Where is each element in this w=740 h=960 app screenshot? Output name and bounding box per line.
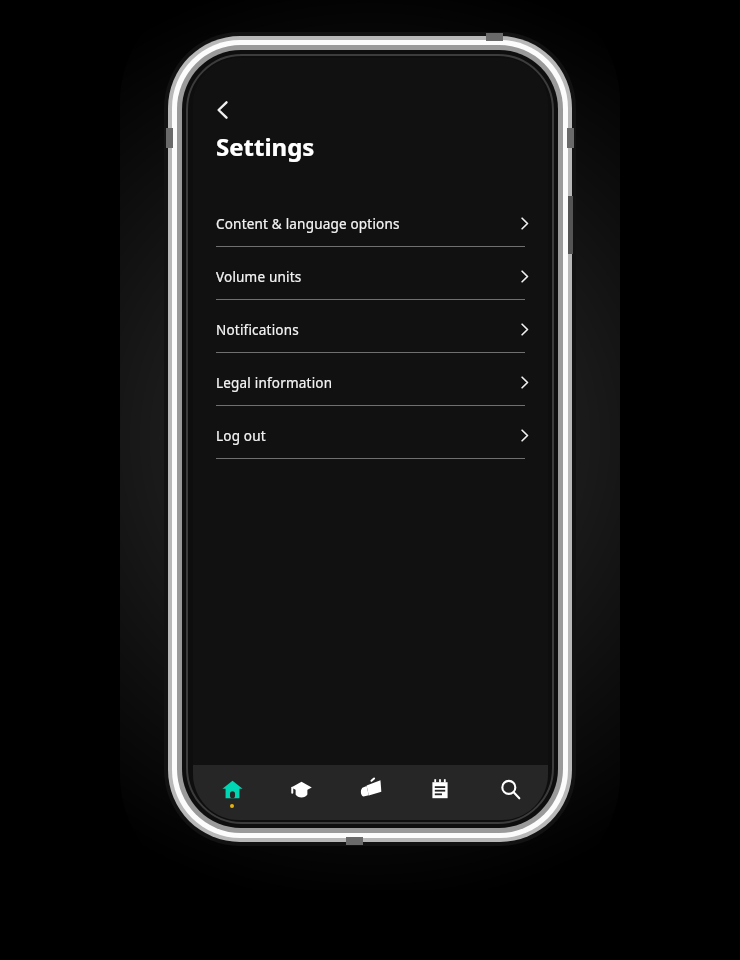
staticText: Volume units bbox=[216, 268, 302, 286]
button[interactable]: Volume units bbox=[193, 254, 548, 307]
button[interactable]: Home bbox=[201, 765, 263, 820]
button[interactable]: Log out bbox=[193, 413, 548, 466]
staticText: Content & language options bbox=[216, 215, 400, 233]
button[interactable]: Content & language options bbox=[193, 201, 548, 254]
button[interactable]: Announcements bbox=[340, 765, 402, 820]
staticText: Settings bbox=[216, 130, 315, 163]
button[interactable]: Legal information bbox=[193, 360, 548, 413]
button[interactable]: Back bbox=[205, 92, 241, 128]
staticText: Notifications bbox=[216, 321, 299, 339]
button[interactable]: Notifications bbox=[193, 307, 548, 360]
button[interactable]: Search bbox=[479, 765, 541, 820]
button[interactable]: Notes bbox=[409, 765, 471, 820]
staticText: Log out bbox=[216, 427, 266, 445]
button[interactable]: Learn bbox=[270, 765, 332, 820]
staticText: Legal information bbox=[216, 374, 333, 392]
